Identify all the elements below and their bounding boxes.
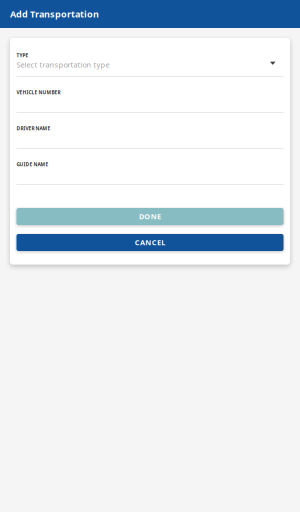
- staticText: GUIDE NAME: [16, 161, 48, 167]
- staticText: DRIVER NAME: [16, 125, 50, 131]
- staticText: CANCEL: [135, 237, 165, 247]
- staticText: DONE: [139, 211, 161, 221]
- staticText: VEHICLE NUMBER: [16, 89, 60, 95]
- button[interactable]: DONE: [16, 208, 283, 225]
- button[interactable]: DRIVER NAME: [10, 113, 290, 148]
- button[interactable]: TYPE: [10, 38, 290, 76]
- staticText: Select transportation type: [16, 59, 109, 69]
- button[interactable]: VEHICLE NUMBER: [10, 77, 290, 112]
- staticText: Add Transportation: [10, 8, 99, 20]
- staticText: TYPE: [16, 52, 28, 58]
- button[interactable]: GUIDE NAME: [10, 149, 290, 184]
- button[interactable]: CANCEL: [16, 234, 283, 251]
